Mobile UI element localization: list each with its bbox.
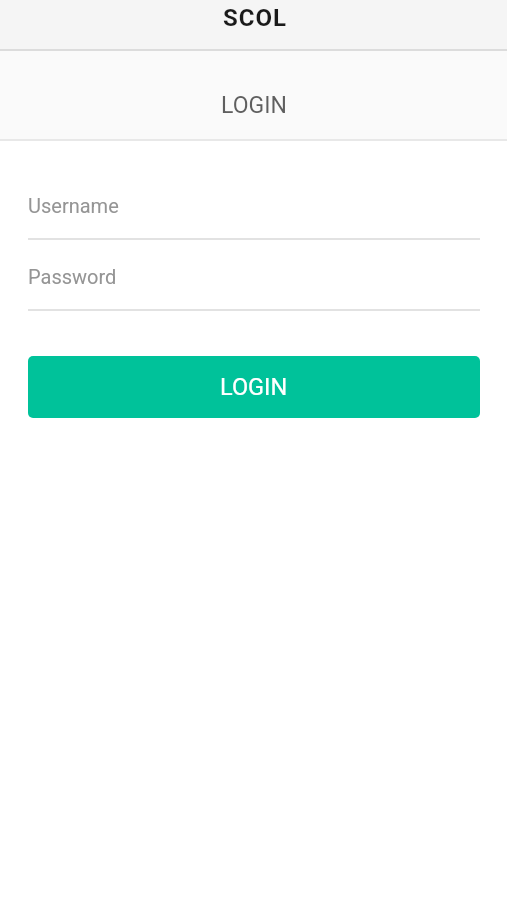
button[interactable]: Password	[28, 265, 480, 311]
staticText: Password	[28, 265, 117, 288]
staticText: LOGIN	[221, 92, 287, 119]
button[interactable]: Username	[28, 194, 480, 240]
staticText: SCOL	[223, 4, 288, 32]
staticText: Username	[28, 194, 119, 217]
button[interactable]: LOGIN	[0, 51, 507, 139]
button[interactable]: LOGIN	[28, 356, 480, 418]
staticText: LOGIN	[220, 373, 288, 401]
